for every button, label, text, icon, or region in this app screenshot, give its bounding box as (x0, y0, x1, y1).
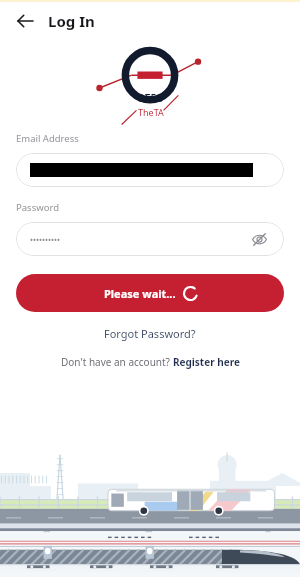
staticText: ΟΣΕΘ (137, 91, 164, 105)
staticText: Password (16, 201, 59, 214)
button[interactable]: Show password (248, 228, 270, 250)
button[interactable]: Please wait... (16, 274, 284, 312)
staticText: Register here (173, 355, 240, 369)
staticText: Log In (48, 11, 95, 31)
button[interactable]: •••••••••• (16, 222, 284, 256)
staticText: Don't have an account? (61, 355, 173, 369)
staticText: Forgot Password? (104, 326, 196, 341)
button[interactable]: Back (12, 8, 38, 34)
button[interactable]: Forgot Password? (0, 326, 300, 341)
staticText: •••••••••• (30, 234, 61, 245)
staticText: Email Address (16, 132, 79, 145)
button[interactable]: Register here (173, 355, 240, 369)
staticText: Please wait... (104, 286, 176, 301)
button[interactable] (16, 153, 284, 187)
staticText: TheTA (138, 106, 164, 118)
